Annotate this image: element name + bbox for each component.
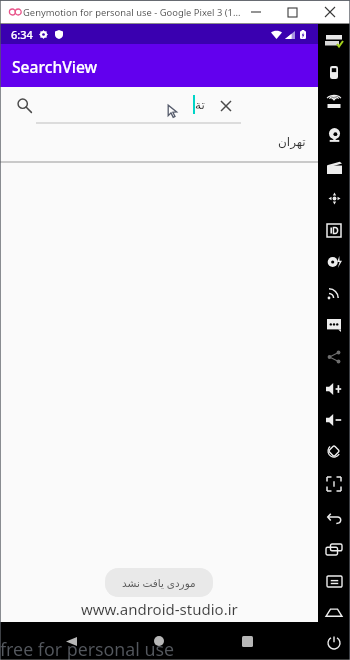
staticText: SearchView xyxy=(12,56,98,77)
button[interactable]: Fullscreen xyxy=(318,469,350,499)
button[interactable]: Recent apps xyxy=(227,622,267,660)
button[interactable]: Home xyxy=(139,622,179,660)
button[interactable]: GPS xyxy=(318,87,350,117)
button[interactable]: Back xyxy=(318,503,350,533)
staticText: www.android-studio.ir xyxy=(81,599,238,619)
button[interactable]: Back xyxy=(51,622,91,660)
button[interactable]: Identifiers xyxy=(318,215,350,245)
button[interactable]: Battery xyxy=(318,57,350,87)
button[interactable]: موردی یافت نشد xyxy=(105,568,213,597)
button[interactable]: Volume down xyxy=(318,405,350,435)
staticText: موردی یافت نشد xyxy=(122,576,196,590)
button[interactable]: Power xyxy=(318,628,350,658)
button[interactable]: Maximize xyxy=(274,0,311,24)
button[interactable]: Volume up xyxy=(318,374,350,404)
button[interactable]: Dpad xyxy=(318,183,350,213)
button[interactable]: Minimize xyxy=(237,0,274,24)
button[interactable]: Clear query xyxy=(214,94,237,117)
staticText: تهران xyxy=(278,135,306,149)
button[interactable]: Menu xyxy=(318,566,350,596)
button[interactable]: Search xyxy=(12,93,36,117)
button[interactable]: Recents xyxy=(318,534,350,564)
button[interactable]: Phone xyxy=(318,310,350,340)
button[interactable]: Home xyxy=(318,597,350,627)
button[interactable]: Rotate xyxy=(318,436,350,466)
staticText: تة xyxy=(195,98,205,112)
button[interactable]: Close xyxy=(311,0,348,24)
staticText: free for personal use xyxy=(0,637,175,660)
staticText: Genymotion for personal use - Google Pix… xyxy=(23,6,241,19)
staticText: 6:34 xyxy=(11,27,33,42)
button[interactable]: Disk IO xyxy=(318,247,350,277)
button[interactable]: Camera xyxy=(318,120,350,150)
button[interactable]: Network xyxy=(318,278,350,308)
button[interactable]: Media xyxy=(318,152,350,182)
button[interactable]: OpenGApps xyxy=(318,26,350,56)
button[interactable]: Screencast xyxy=(318,342,350,372)
